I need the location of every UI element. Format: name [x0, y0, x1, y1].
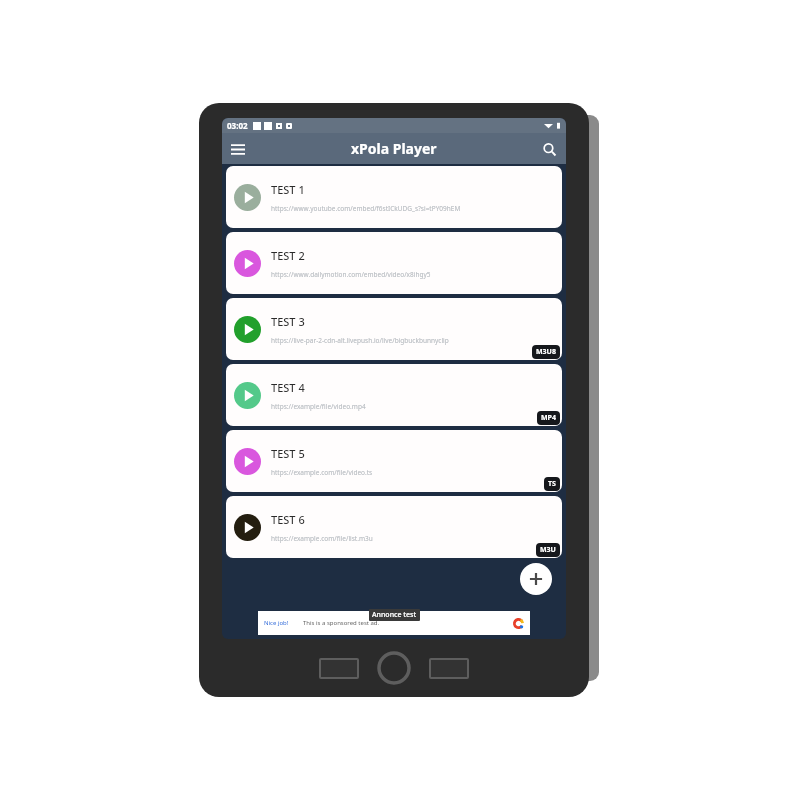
button[interactable]: Search — [536, 136, 562, 162]
staticText: https://example/file/video.mp4 — [271, 402, 366, 411]
staticText: https://example.com/file/video.ts — [271, 468, 373, 477]
staticText: TEST 4 — [271, 380, 305, 395]
staticText: TEST 2 — [271, 248, 305, 263]
staticText: TEST 1 — [271, 182, 305, 197]
staticText: Annonce test — [372, 610, 417, 620]
button[interactable]: TEST 4 — [226, 364, 562, 426]
staticText: TS — [548, 479, 556, 489]
button[interactable]: TEST 3 — [226, 298, 562, 360]
staticText: TEST 5 — [271, 446, 305, 461]
staticText: M3U — [540, 545, 556, 555]
staticText: https://www.dailymotion.com/embed/video/… — [271, 270, 431, 279]
staticText: 03:02 — [227, 120, 248, 131]
staticText: https://live-par-2-cdn-alt.livepush.io/l… — [271, 336, 449, 345]
staticText: TEST 3 — [271, 314, 305, 329]
staticText: https://example.com/file/list.m3u — [271, 534, 373, 543]
button[interactable]: TEST 2 — [226, 232, 562, 294]
staticText: MP4 — [541, 413, 556, 423]
button[interactable]: TEST 6 — [226, 496, 562, 558]
button[interactable]: TEST 5 — [226, 430, 562, 492]
button[interactable]: Add stream — [520, 563, 552, 595]
staticText: M3U8 — [536, 347, 556, 357]
staticText: https://www.youtube.com/embed/f6stICkUDG… — [271, 204, 461, 213]
staticText: TEST 6 — [271, 512, 305, 527]
button[interactable]: Nice job! — [258, 611, 530, 635]
button[interactable]: Open navigation menu — [225, 136, 251, 162]
staticText: This is a sponsored test ad. — [303, 619, 380, 627]
staticText: xPola Player — [351, 139, 437, 158]
button[interactable]: TEST 1 — [226, 166, 562, 228]
staticText: Nice job! — [264, 619, 289, 627]
